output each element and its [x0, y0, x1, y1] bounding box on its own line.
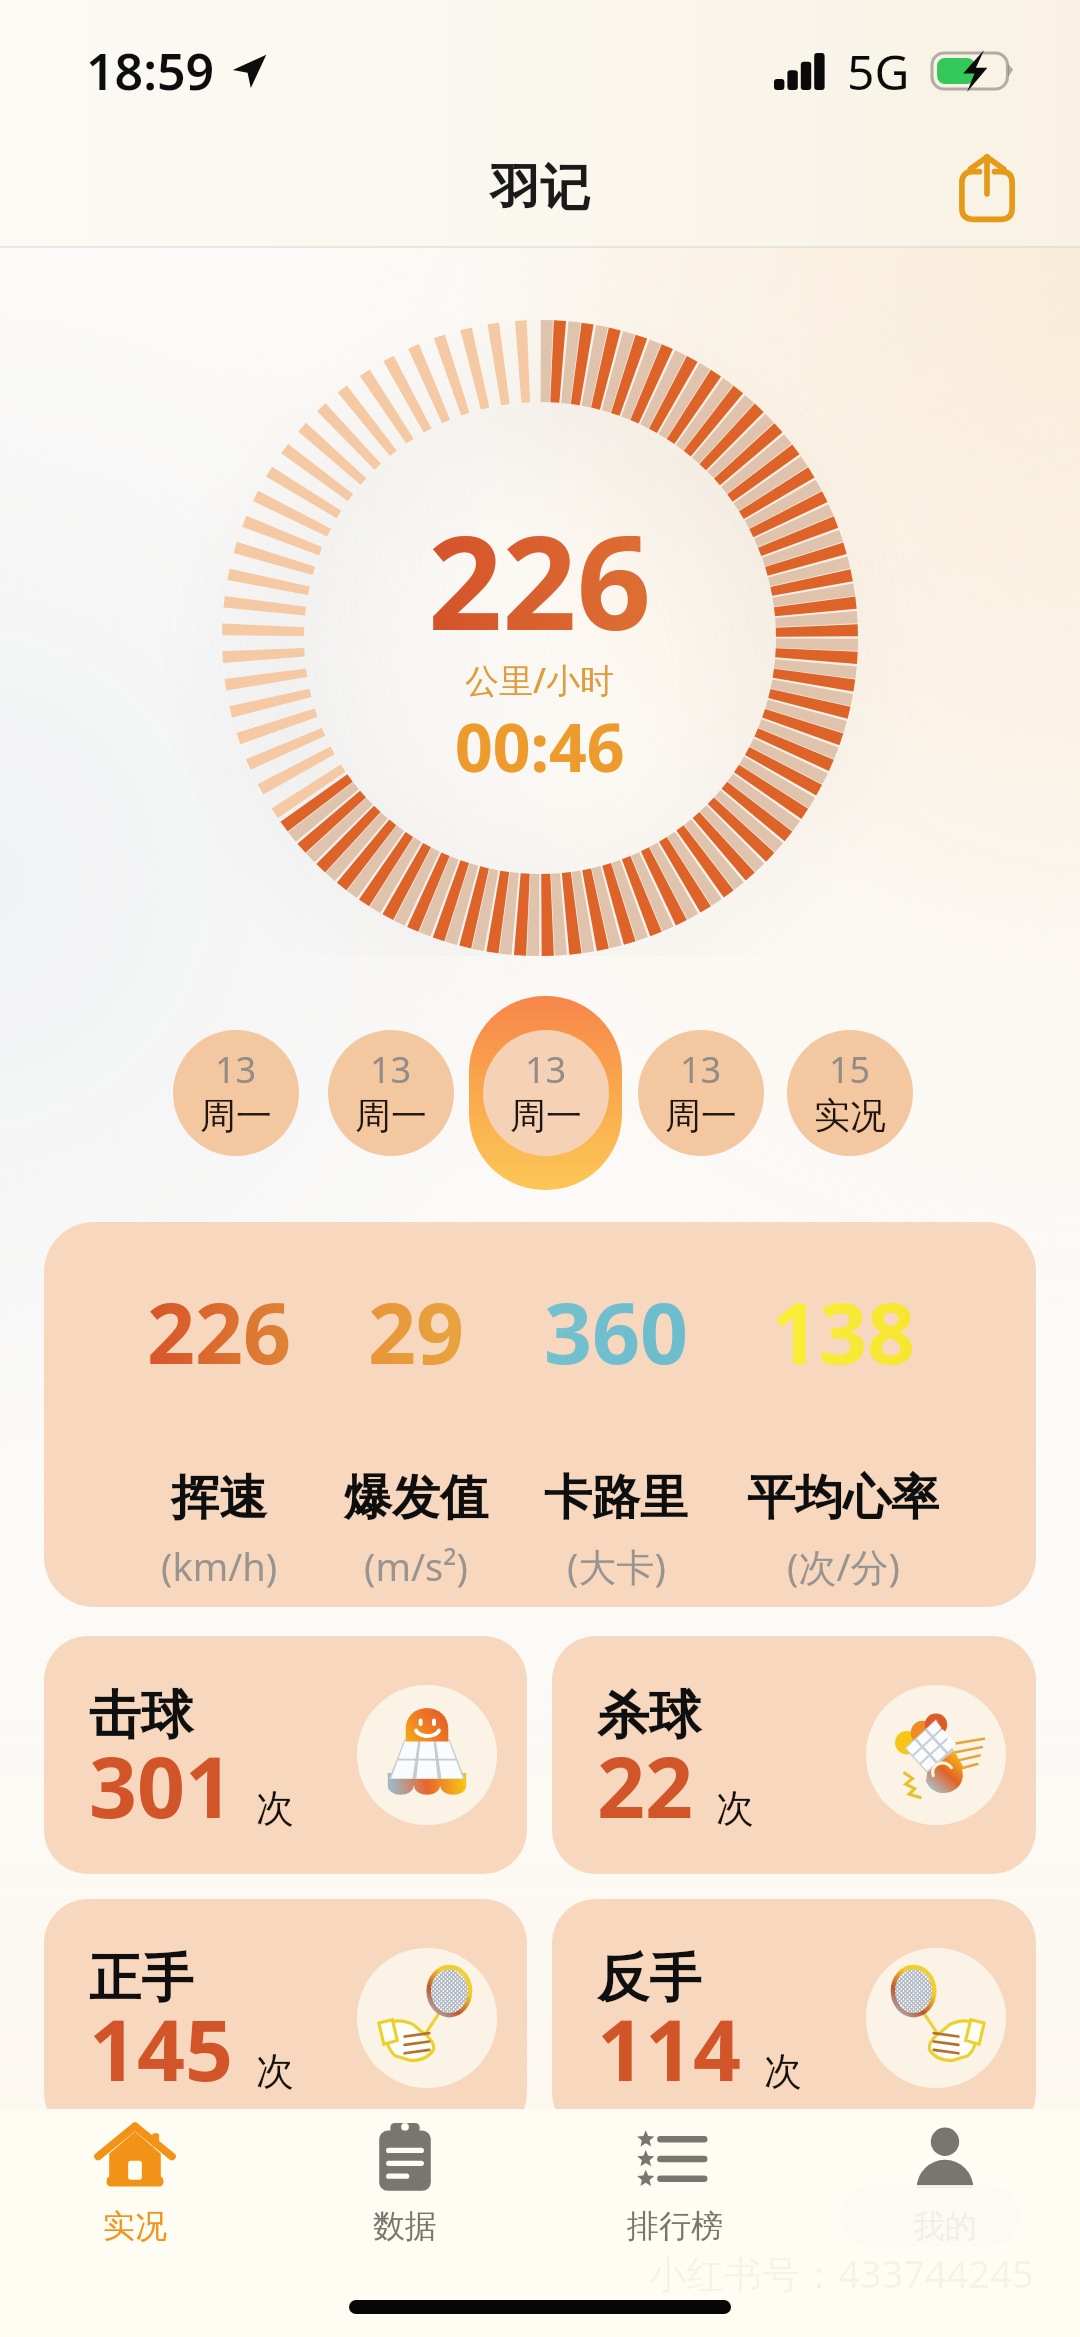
- button[interactable]: 226: [44, 1222, 1036, 1607]
- staticText: 次: [256, 1784, 294, 1832]
- staticText: 次: [764, 2047, 802, 2095]
- staticText: 杀球: [597, 1683, 701, 1749]
- button[interactable]: 杀球: [552, 1636, 1036, 1874]
- staticText: 13: [215, 1045, 257, 1094]
- staticText: 小红书号：433744245: [648, 2247, 1034, 2299]
- staticText: 排行榜: [627, 2206, 723, 2246]
- staticText: 13: [680, 1045, 722, 1094]
- staticText: 实况: [103, 2206, 167, 2246]
- staticText: 实况: [814, 1093, 886, 1138]
- staticText: 次: [256, 2047, 294, 2095]
- staticText: 平均心率: [747, 1468, 939, 1528]
- staticText: 226: [147, 1274, 292, 1388]
- button[interactable]: Share: [940, 140, 1034, 234]
- staticText: 爆发值: [344, 1468, 488, 1528]
- staticText: 15: [829, 1045, 871, 1094]
- staticText: 29: [368, 1274, 465, 1388]
- staticText: (m/s²): [364, 1540, 468, 1592]
- staticText: 13: [525, 1045, 567, 1094]
- staticText: 114: [597, 1991, 742, 2105]
- button[interactable]: 数据: [270, 2116, 540, 2246]
- staticText: 13: [370, 1045, 412, 1094]
- staticText: 5G: [847, 39, 910, 104]
- staticText: (大卡): [567, 1540, 666, 1592]
- staticText: 138: [771, 1274, 916, 1388]
- button[interactable]: 13: [468, 995, 623, 1191]
- staticText: 我的: [913, 2206, 977, 2246]
- button[interactable]: 15: [778, 995, 922, 1191]
- staticText: 226: [428, 491, 652, 668]
- staticText: 公里/小时: [465, 657, 615, 703]
- staticText: 击球: [89, 1683, 193, 1749]
- button[interactable]: 正手: [44, 1899, 527, 2137]
- button[interactable]: 反手: [552, 1899, 1036, 2137]
- staticText: 挥速: [171, 1468, 267, 1528]
- staticText: 羽记: [490, 157, 590, 220]
- staticText: 301: [89, 1728, 234, 1842]
- staticText: (次/分): [787, 1540, 900, 1592]
- button[interactable]: 13: [313, 995, 468, 1191]
- button[interactable]: 实况: [0, 2116, 270, 2246]
- button[interactable]: 我的: [810, 2116, 1080, 2246]
- staticText: 22: [597, 1728, 694, 1842]
- button[interactable]: 击球: [44, 1636, 527, 1874]
- staticText: (km/h): [161, 1540, 278, 1592]
- staticText: 正手: [89, 1946, 193, 2012]
- staticText: 18:59: [86, 37, 215, 105]
- staticText: 数据: [373, 2206, 437, 2246]
- staticText: 反手: [597, 1946, 701, 2012]
- staticText: 周一: [665, 1093, 737, 1138]
- staticText: 360: [544, 1274, 689, 1388]
- button[interactable]: 13: [623, 995, 778, 1191]
- button[interactable]: 排行榜: [540, 2116, 810, 2246]
- staticText: 00:46: [455, 701, 625, 791]
- staticText: 周一: [200, 1093, 272, 1138]
- staticText: 周一: [355, 1093, 427, 1138]
- staticText: 145: [89, 1991, 234, 2105]
- staticText: 周一: [510, 1093, 582, 1138]
- button[interactable]: 13: [158, 995, 313, 1191]
- staticText: 卡路里: [544, 1468, 688, 1528]
- staticText: 次: [716, 1784, 754, 1832]
